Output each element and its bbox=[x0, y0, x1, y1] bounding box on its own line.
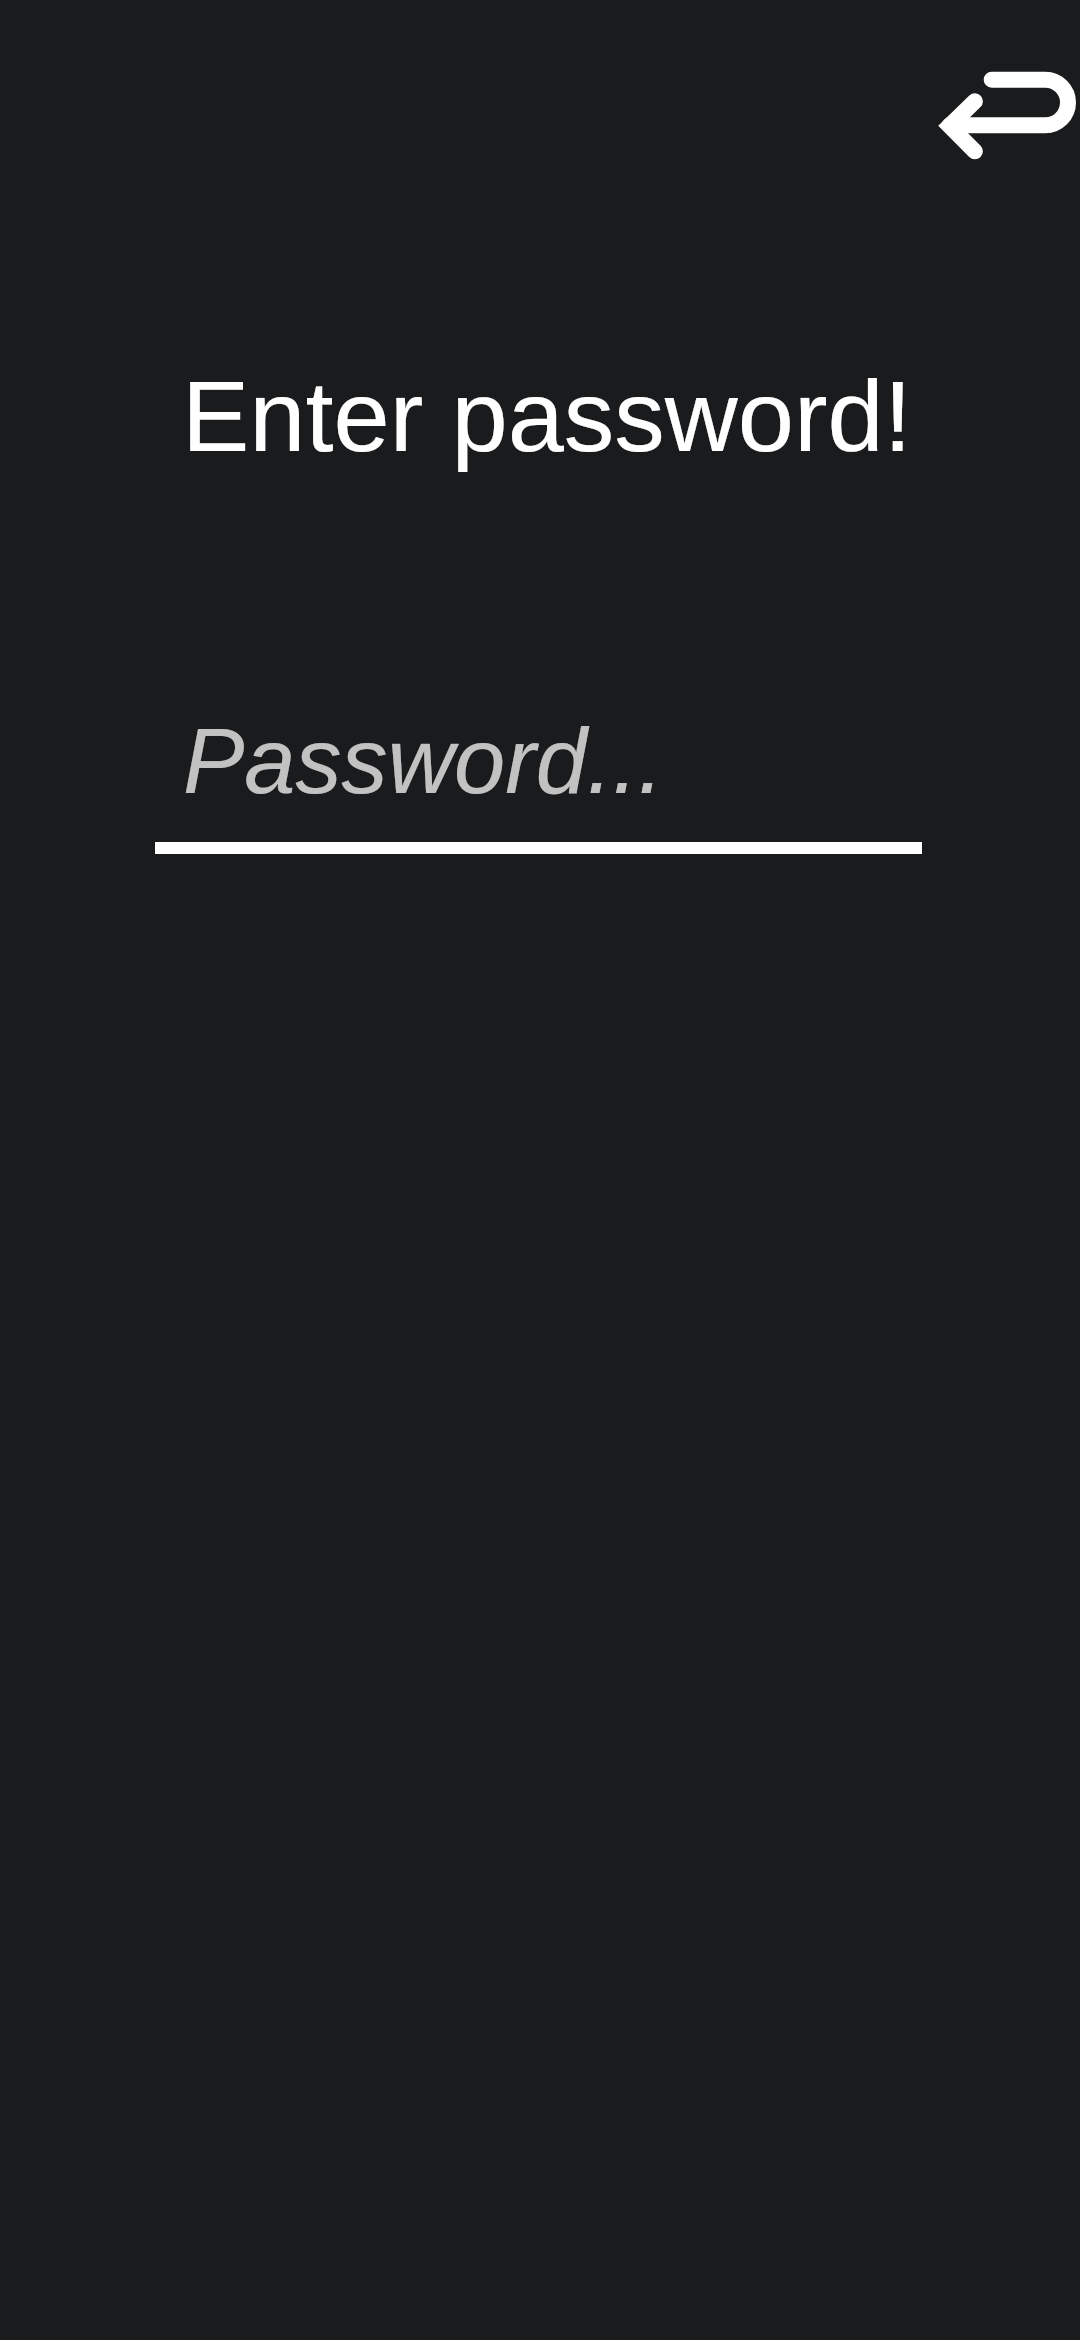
staticText: Enter password! bbox=[182, 360, 912, 473]
staticText: Password... bbox=[183, 710, 664, 813]
button[interactable]: Back bbox=[916, 48, 1080, 182]
button[interactable]: Password... bbox=[155, 690, 922, 854]
